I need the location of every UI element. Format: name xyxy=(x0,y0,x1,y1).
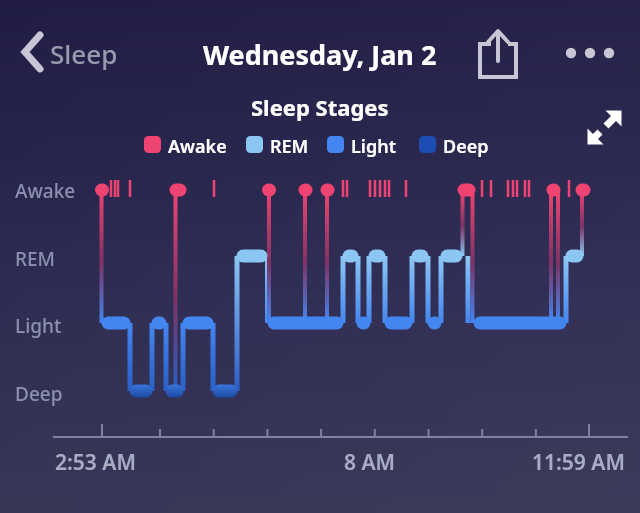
staticText: Deep xyxy=(15,381,63,407)
staticText: 8 AM xyxy=(344,448,396,477)
staticText: Light xyxy=(15,313,62,339)
staticText: Light xyxy=(351,134,396,159)
button[interactable] xyxy=(584,104,628,148)
staticText: REM xyxy=(15,246,56,272)
staticText: REM xyxy=(270,134,309,159)
staticText: 11:59 AM xyxy=(532,448,625,477)
staticText: Sleep Stages xyxy=(251,92,389,122)
staticText: Sleep xyxy=(50,36,118,71)
button[interactable] xyxy=(556,32,620,74)
staticText: Awake xyxy=(168,134,227,159)
staticText: Awake xyxy=(15,178,76,204)
staticText: Wednesday, Jan 2 xyxy=(203,36,437,73)
staticText: Deep xyxy=(443,134,489,159)
button[interactable] xyxy=(476,26,522,82)
staticText: 2:53 AM xyxy=(55,448,136,477)
button[interactable]: Sleep xyxy=(14,30,124,76)
